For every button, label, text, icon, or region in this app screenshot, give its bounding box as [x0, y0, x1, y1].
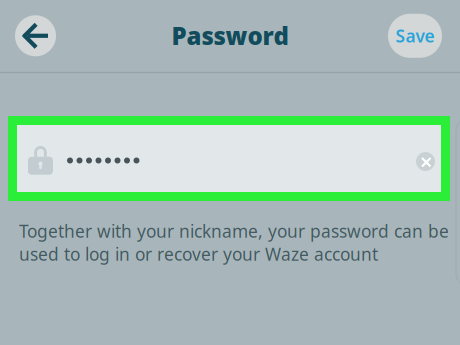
staticText: used to log in or recover your Waze acco…: [19, 242, 378, 265]
button[interactable]: Save: [388, 14, 442, 58]
staticText: Together with your nickname, your passwo…: [19, 219, 449, 242]
button[interactable]: Back: [15, 15, 56, 56]
staticText: Save: [395, 24, 434, 47]
staticText: Password: [171, 20, 288, 52]
